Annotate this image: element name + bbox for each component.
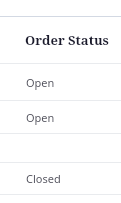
button[interactable]: Order Status — [0, 17, 121, 63]
button[interactable]: Closed — [0, 163, 121, 194]
staticText: Order Status — [25, 31, 109, 49]
button[interactable]: Open — [0, 64, 121, 100]
button[interactable]: Open — [0, 101, 121, 133]
staticText: Closed — [26, 171, 61, 186]
staticText: Open — [26, 110, 55, 125]
staticText: Open — [26, 75, 55, 90]
